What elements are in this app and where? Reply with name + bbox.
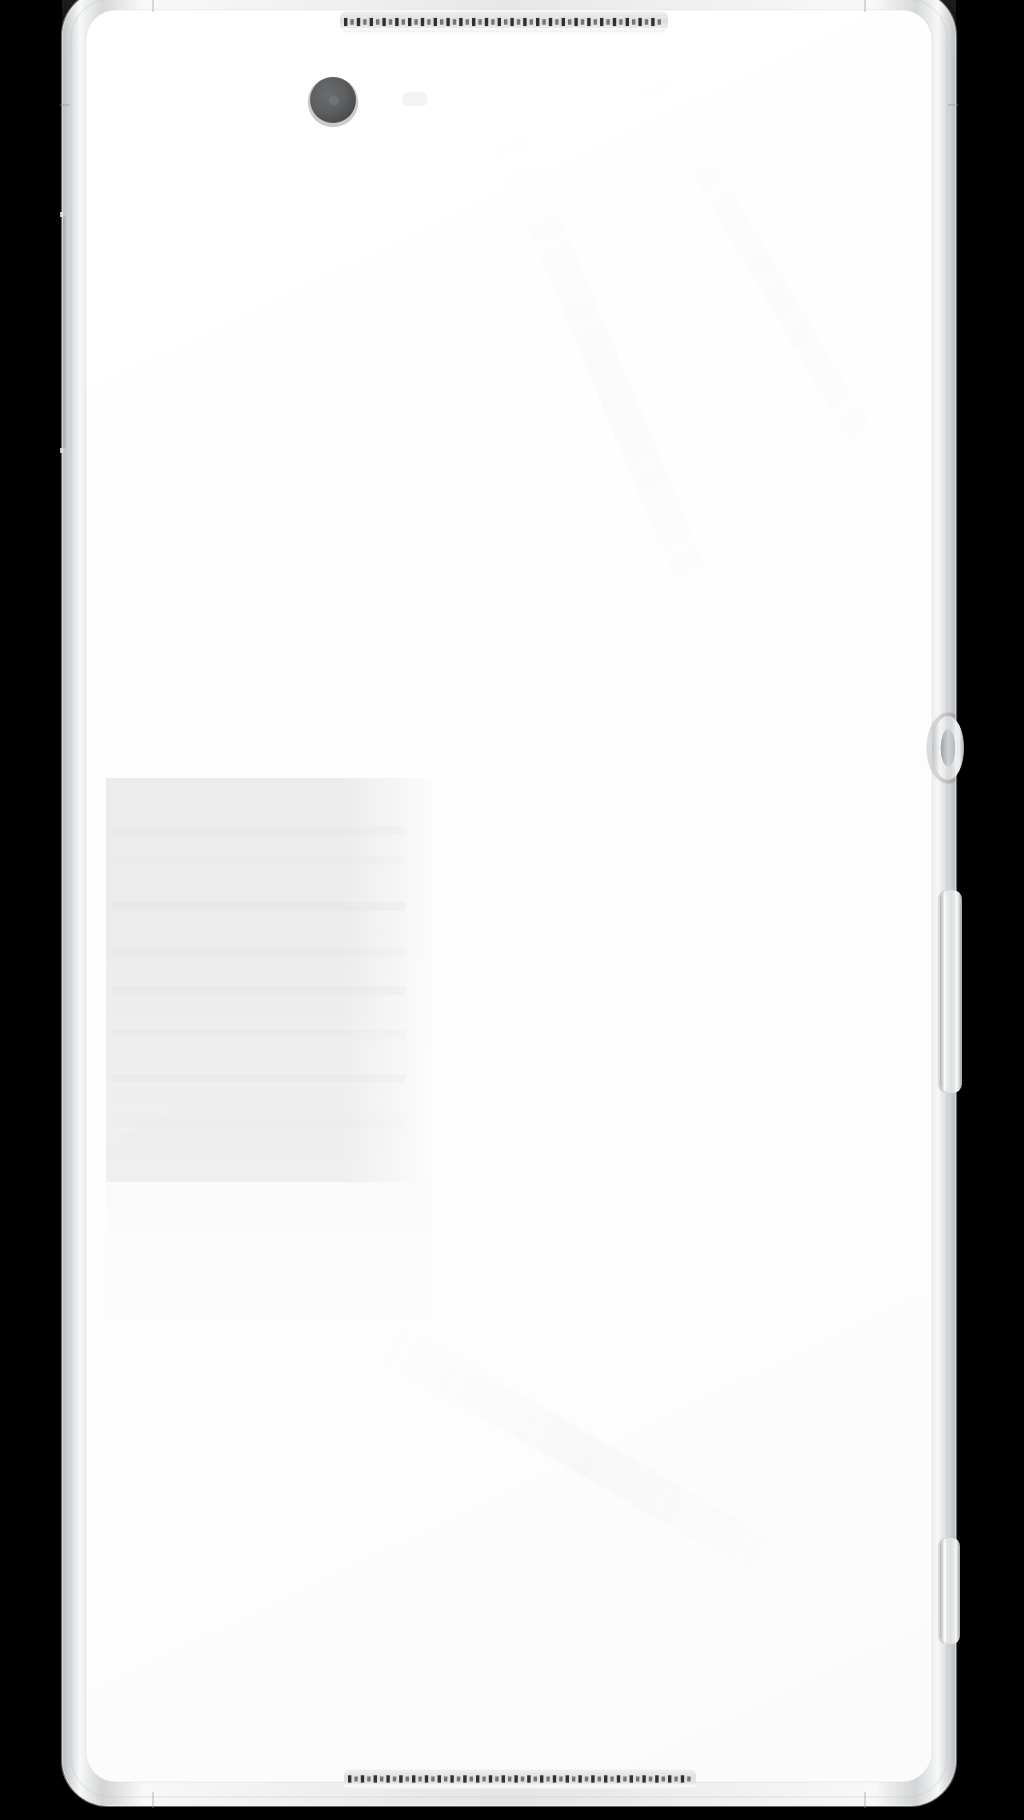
button[interactable]: Phone device front view (0, 0, 1024, 1820)
